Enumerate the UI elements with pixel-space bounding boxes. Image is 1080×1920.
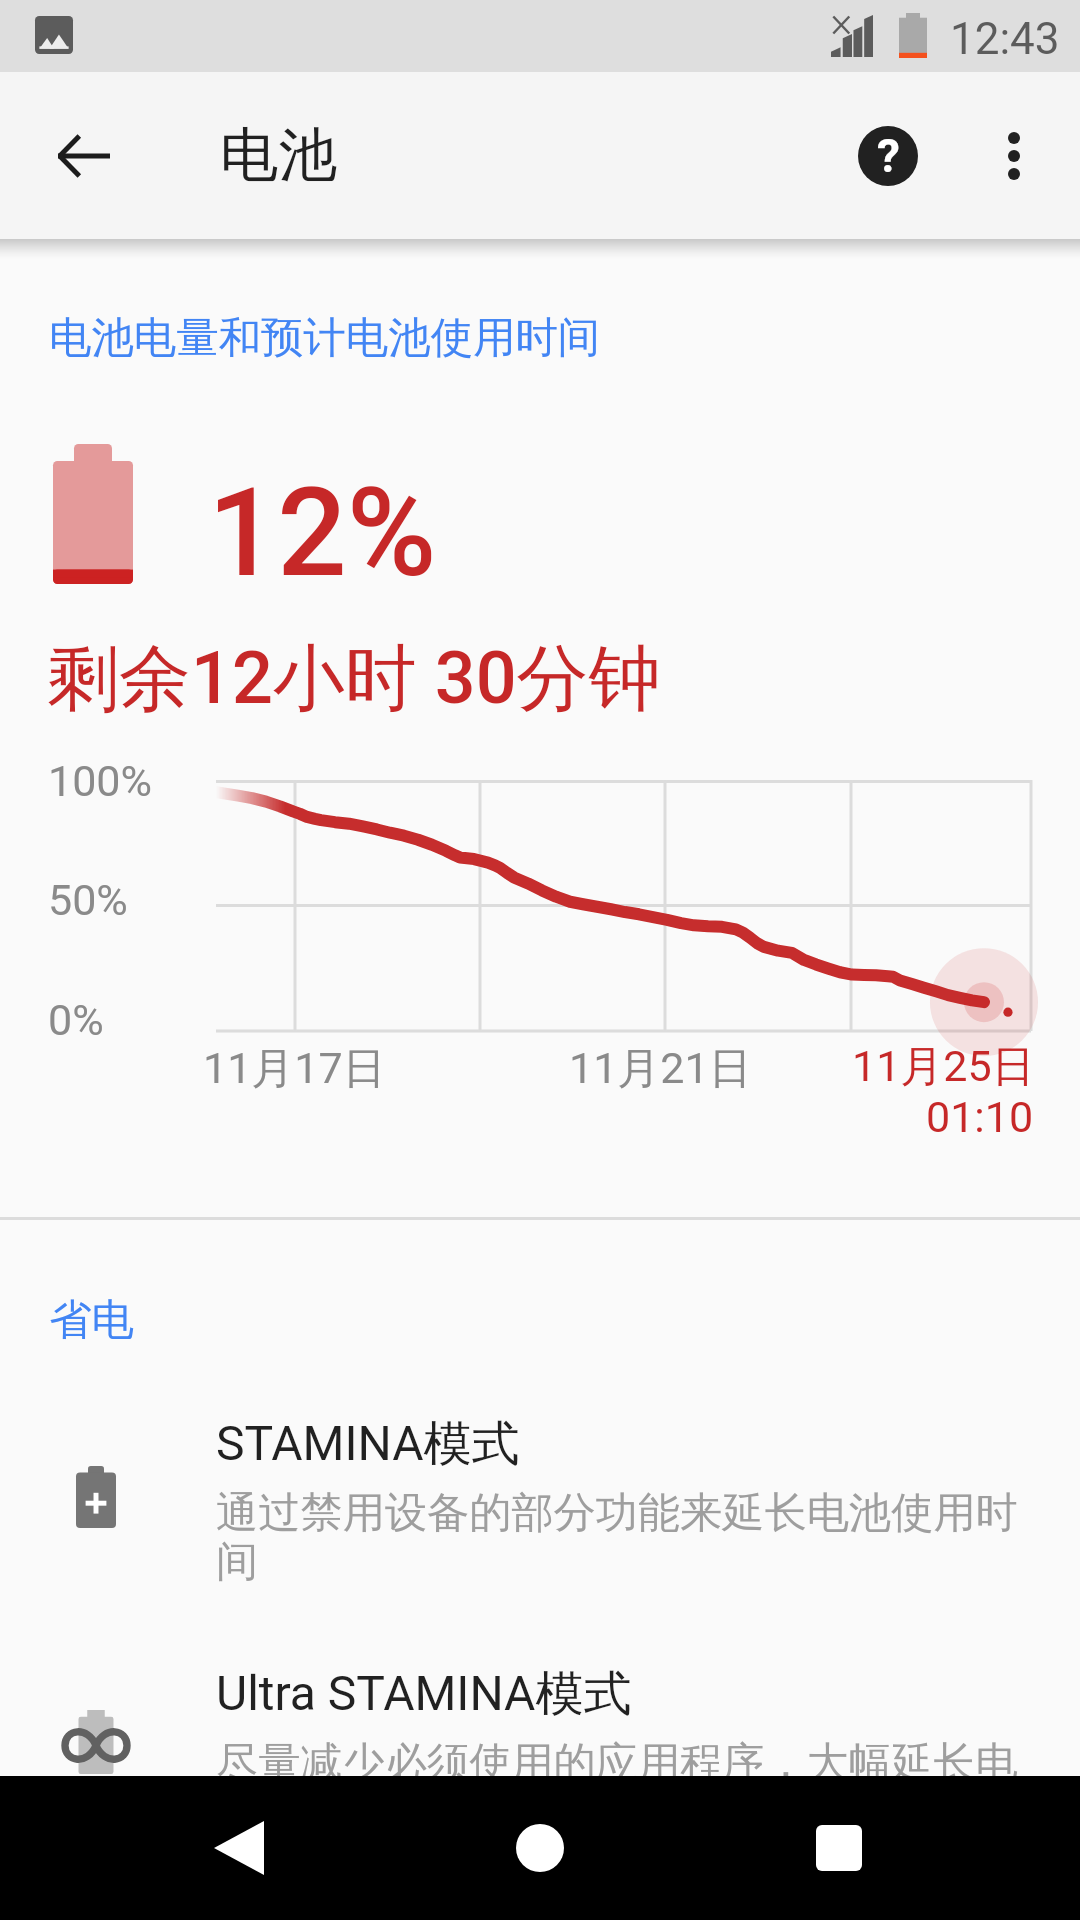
staticText: 0% xyxy=(48,995,104,1045)
staticText: 11月25日 xyxy=(852,1040,1035,1094)
staticText: 01:10 xyxy=(926,1092,1034,1142)
staticText: 11月21日 xyxy=(569,1042,752,1096)
staticText: STAMINA模式 xyxy=(216,1414,520,1474)
staticText: 通过禁用设备的部分功能来延长电池使用时间 xyxy=(216,1486,1028,1588)
button[interactable]: Recent apps xyxy=(749,1776,929,1920)
staticText: 尽量减少必须使用的应用程序，大幅延长电池使用时间 xyxy=(216,1736,1028,1838)
staticText: 剩余12小时 30分钟 xyxy=(47,634,661,725)
staticText: 100% xyxy=(48,756,152,806)
staticText: ? xyxy=(877,129,900,183)
staticText: Ultra STAMINA模式 xyxy=(216,1664,632,1724)
button[interactable]: Back xyxy=(149,1776,329,1920)
staticText: 12% xyxy=(208,462,437,605)
staticText: 电池电量和预计电池使用时间 xyxy=(49,311,601,364)
button[interactable]: More options xyxy=(948,72,1080,239)
staticText: 50% xyxy=(48,875,128,925)
button[interactable]: Ultra STAMINA模式 xyxy=(0,1664,1080,1914)
button[interactable]: Help xyxy=(828,72,948,239)
button[interactable]: Back xyxy=(0,72,167,239)
staticText: 11月17日 xyxy=(203,1042,386,1096)
button[interactable]: STAMINA模式 xyxy=(0,1414,1080,1664)
button[interactable]: Home xyxy=(450,1776,630,1920)
staticText: 省电 xyxy=(49,1293,134,1346)
staticText: 12:43 xyxy=(950,13,1060,65)
staticText: 电池 xyxy=(220,119,337,193)
